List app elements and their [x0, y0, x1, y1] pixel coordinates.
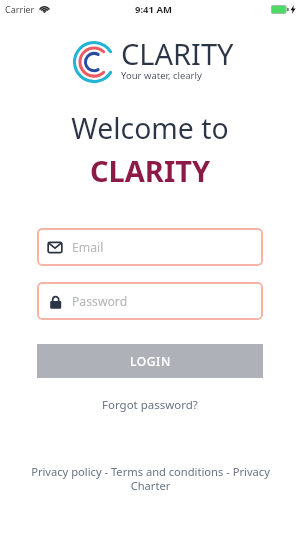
staticText: Welcome to — [0, 109, 300, 148]
staticText: Forgot password? — [102, 397, 198, 413]
staticText: LOGIN — [130, 353, 171, 369]
staticText: 9:41 AM — [135, 3, 172, 16]
staticText: Your water, clearly — [121, 69, 202, 82]
button[interactable]: Password — [47, 282, 263, 320]
staticText: CLARITY — [0, 151, 300, 190]
staticText: Password — [72, 293, 128, 310]
staticText: CLARITY — [121, 34, 234, 73]
button[interactable]: Privacy policy - Terms and conditions - … — [29, 464, 272, 493]
staticText: Email — [72, 239, 104, 256]
button[interactable]: Email — [47, 228, 263, 266]
button[interactable]: LOGIN — [37, 344, 263, 378]
staticText: Carrier — [5, 3, 35, 15]
button[interactable]: Forgot password? — [92, 394, 208, 416]
staticText: Privacy policy - Terms and conditions - … — [29, 464, 272, 493]
